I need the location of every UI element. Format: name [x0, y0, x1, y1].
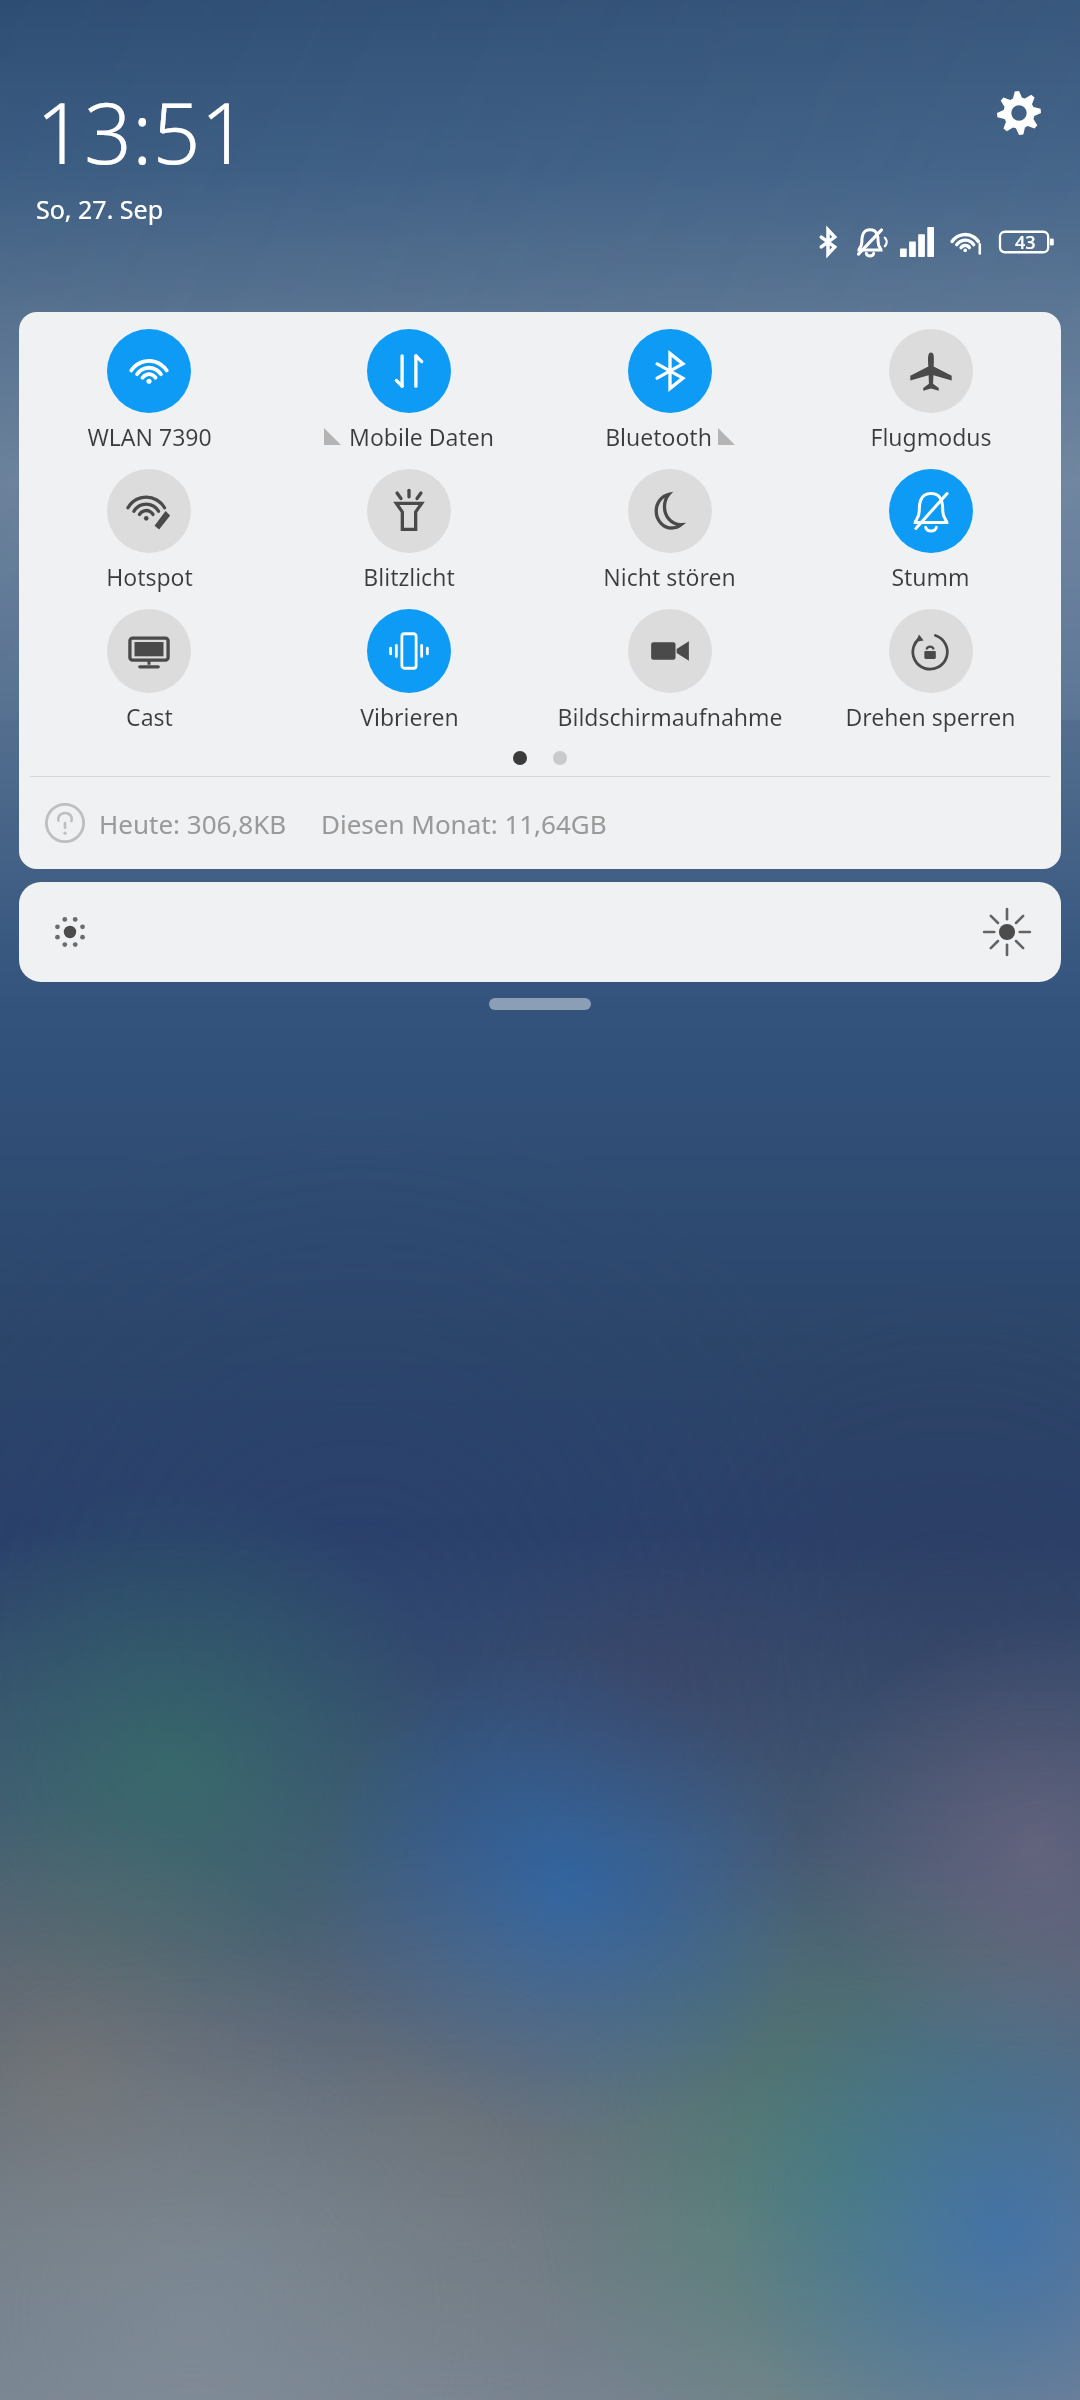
button[interactable]: Drehen sperren	[800, 609, 1061, 737]
button[interactable]: WLAN	[19, 329, 279, 457]
staticText: Diesen Monat: 11,64GB	[321, 806, 607, 841]
staticText: Vibrieren	[360, 701, 459, 732]
button[interactable]: Bildschirmaufnahme	[539, 609, 800, 737]
button[interactable]: Bluetooth	[539, 329, 800, 457]
staticText: Cast	[126, 701, 173, 732]
button[interactable]: Vibrieren	[279, 609, 539, 737]
button[interactable]: Heute: 306,8KB	[19, 777, 1061, 869]
button[interactable]: Settings	[986, 80, 1052, 146]
staticText: Mobile Daten	[349, 421, 494, 452]
staticText: Drehen sperren	[845, 701, 1016, 732]
staticText: 13:51	[36, 74, 249, 188]
button[interactable]: Mobile Daten	[279, 329, 539, 457]
button[interactable]: Hotspot	[19, 469, 279, 597]
staticText: So, 27. Sep	[36, 192, 164, 226]
button[interactable]: Nicht stören	[539, 469, 800, 597]
staticText: Hotspot	[106, 561, 193, 592]
staticText: Bluetooth	[605, 421, 712, 452]
staticText: Blitzlicht	[363, 561, 455, 592]
button[interactable]: Cast	[19, 609, 279, 737]
staticText: Stumm	[891, 561, 970, 592]
staticText: Heute: 306,8KB	[99, 806, 287, 841]
button[interactable]: Brightness	[19, 882, 1061, 982]
button[interactable]: Blitzlicht	[279, 469, 539, 597]
button[interactable]: Stumm	[800, 469, 1061, 597]
staticText: Nicht stören	[603, 561, 736, 592]
staticText: WLAN 7390	[87, 421, 212, 452]
staticText: Bildschirmaufnahme	[557, 701, 783, 732]
staticText: 43	[1015, 230, 1036, 255]
button[interactable]: Flugmodus	[800, 329, 1061, 457]
staticText: Flugmodus	[870, 421, 992, 452]
